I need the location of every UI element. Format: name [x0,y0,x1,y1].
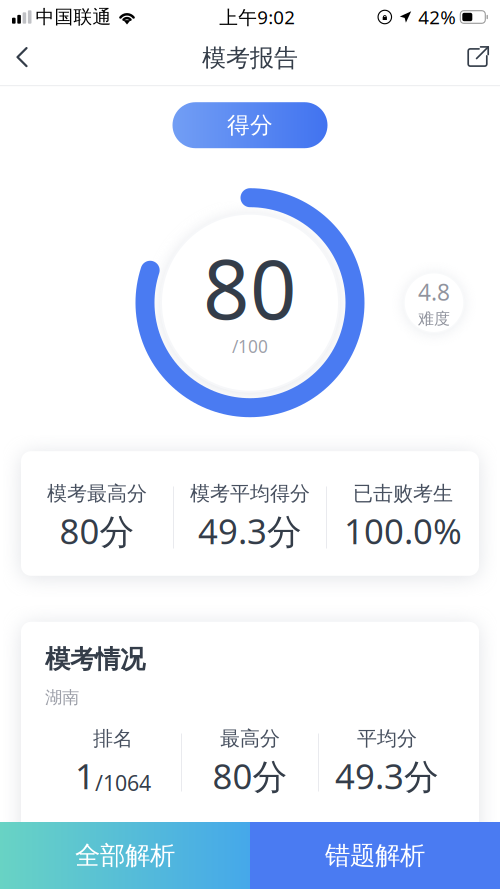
staticText: 中国联通 [35,5,111,28]
staticText: /100 [232,335,268,358]
staticText: 1 [75,753,95,799]
staticText: 100.0% [344,508,462,554]
staticText: 排名 [93,726,133,751]
staticText: 模考报告 [202,43,298,73]
staticText: 得分 [227,111,273,139]
staticText: 80 [203,234,297,342]
staticText: 49.3分 [198,508,302,554]
staticText: 49.3分 [335,753,439,799]
button[interactable]: 全部解析 [0,822,250,889]
staticText: 难度 [418,309,450,329]
staticText: 模考平均得分 [190,481,310,506]
staticText: 80分 [59,508,134,554]
staticText: 4.8 [418,277,450,307]
staticText: 错题解析 [325,840,425,871]
staticText: /1064 [95,768,151,797]
staticText: 80分 [212,753,287,799]
button[interactable]: Back [0,35,44,79]
button[interactable]: 得分 [172,102,327,148]
staticText: 42% [418,5,456,29]
staticText: 上午9:02 [219,5,295,29]
staticText: 最高分 [220,726,280,751]
button[interactable]: 错题解析 [250,822,500,889]
staticText: 湖南 [45,687,79,708]
button[interactable]: Share [456,35,500,79]
staticText: 平均分 [357,726,417,751]
staticText: 全部解析 [75,840,175,871]
staticText: 模考最高分 [47,481,147,506]
staticText: 模考情况 [45,644,145,675]
staticText: 已击败考生 [353,481,453,506]
